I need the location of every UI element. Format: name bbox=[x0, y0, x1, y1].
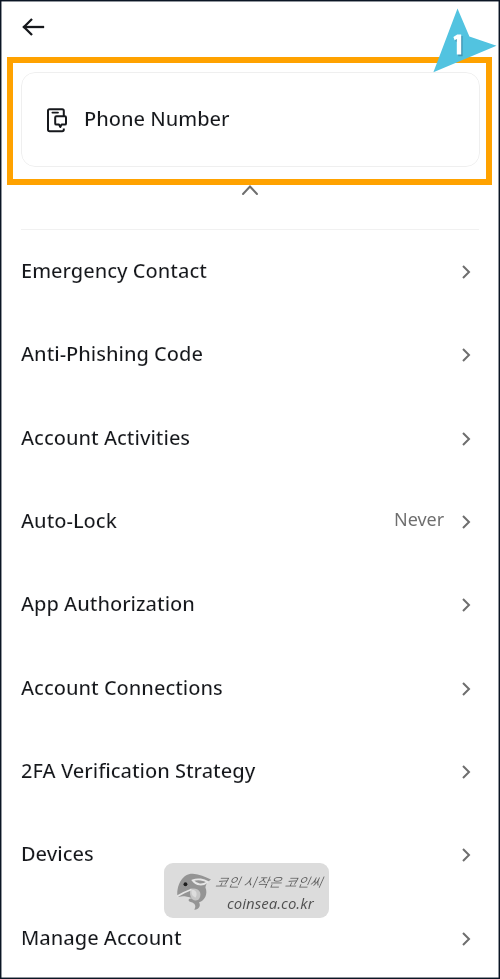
staticText: Account Connections bbox=[21, 674, 223, 701]
staticText: 2FA Verification Strategy bbox=[21, 757, 256, 784]
staticText: coinsea.co.kr bbox=[227, 893, 314, 913]
staticText: Emergency Contact bbox=[21, 257, 207, 284]
button[interactable]: Back bbox=[14, 6, 56, 48]
button[interactable]: App Authorization bbox=[0, 562, 500, 645]
button[interactable]: Manage Account bbox=[0, 896, 500, 979]
staticText: 코인 시작은 코인씨 bbox=[215, 873, 323, 890]
staticText: Never bbox=[394, 507, 445, 532]
staticText: Manage Account bbox=[21, 924, 182, 951]
button[interactable]: Auto-Lock bbox=[0, 479, 500, 562]
button[interactable]: Anti-Phishing Code bbox=[0, 312, 500, 395]
staticText: Anti-Phishing Code bbox=[21, 340, 203, 367]
button[interactable]: Emergency Contact bbox=[0, 229, 500, 312]
staticText: Auto-Lock bbox=[21, 507, 117, 534]
staticText: Account Activities bbox=[21, 424, 191, 451]
button[interactable]: Account Connections bbox=[0, 646, 500, 729]
staticText: Devices bbox=[21, 840, 94, 867]
staticText: Phone Number bbox=[84, 105, 230, 132]
staticText: App Authorization bbox=[21, 590, 195, 617]
button[interactable]: Devices bbox=[0, 812, 500, 895]
button[interactable]: Account Activities bbox=[0, 396, 500, 479]
button[interactable]: 2FA Verification Strategy bbox=[0, 729, 500, 812]
button[interactable]: Phone Number bbox=[21, 72, 480, 167]
button[interactable]: Collapse bbox=[228, 174, 272, 208]
